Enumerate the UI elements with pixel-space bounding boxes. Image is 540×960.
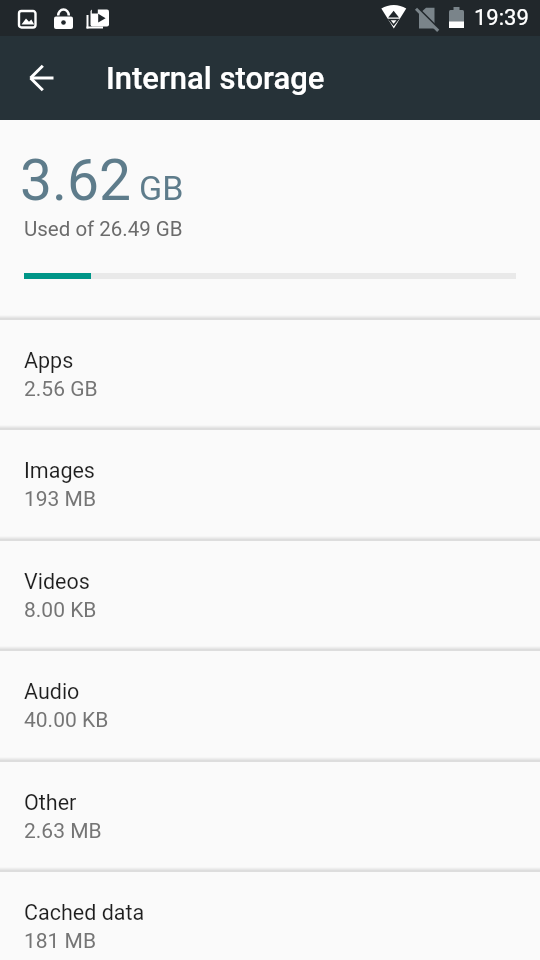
staticText: Cached data [24, 900, 145, 925]
button[interactable]: Images [0, 430, 540, 536]
staticText: GB [139, 168, 184, 208]
button[interactable] [0, 36, 84, 120]
staticText: 3.62 [20, 147, 132, 214]
staticText: Used of 26.49 GB [24, 217, 183, 241]
staticText: Internal storage [106, 60, 325, 96]
staticText: 193 MB [24, 487, 97, 512]
staticText: 2.56 GB [24, 377, 98, 402]
button[interactable]: Cached data [0, 872, 540, 960]
button[interactable]: Audio [0, 651, 540, 757]
staticText: Videos [24, 569, 90, 594]
staticText: 2.63 MB [24, 819, 102, 844]
button[interactable]: Apps [0, 320, 540, 425]
staticText: Other [24, 790, 77, 815]
button[interactable]: Videos [0, 541, 540, 646]
staticText: Audio [24, 679, 80, 704]
staticText: 181 MB [24, 929, 97, 954]
staticText: Apps [24, 348, 74, 373]
staticText: 19:39 [474, 5, 529, 31]
staticText: 40.00 KB [24, 708, 109, 733]
button[interactable]: Other [0, 762, 540, 867]
staticText: 8.00 KB [24, 598, 97, 623]
staticText: Images [24, 458, 95, 483]
